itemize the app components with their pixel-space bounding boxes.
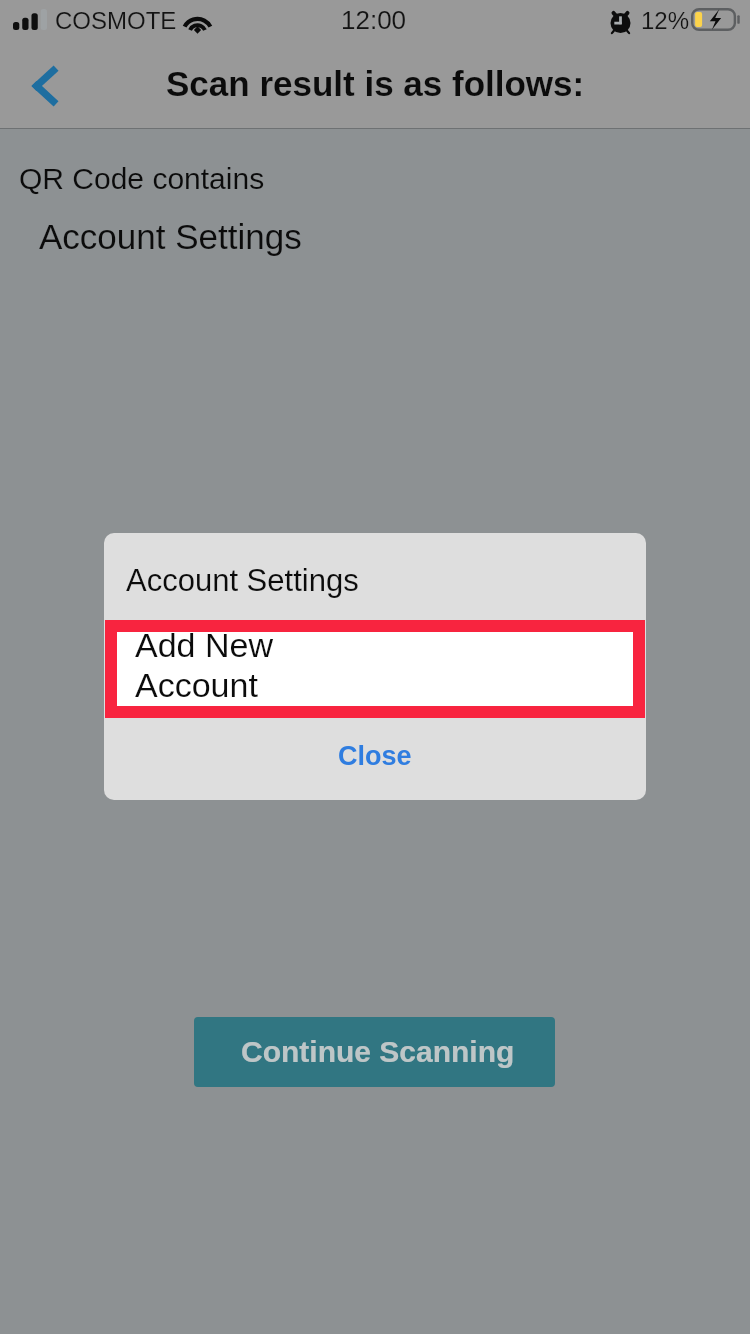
staticText: Account Settings (126, 563, 359, 598)
button[interactable]: Continue Scanning (194, 1017, 555, 1087)
button[interactable]: Back (10, 53, 80, 123)
staticText: Scan result is as follows: (166, 64, 585, 103)
staticText: QR Code contains (19, 162, 265, 196)
staticText: Account Settings (39, 217, 302, 256)
staticText: Close (338, 741, 412, 771)
staticText: Continue Scanning (241, 1035, 515, 1069)
button[interactable]: Close (104, 718, 646, 800)
staticText: 12:00 (341, 5, 407, 34)
button[interactable]: Add New (105, 620, 645, 718)
staticText: 12% (641, 7, 690, 34)
staticText: Account (135, 666, 258, 704)
staticText: COSMOTE (55, 7, 177, 34)
staticText: Add New (135, 626, 273, 664)
